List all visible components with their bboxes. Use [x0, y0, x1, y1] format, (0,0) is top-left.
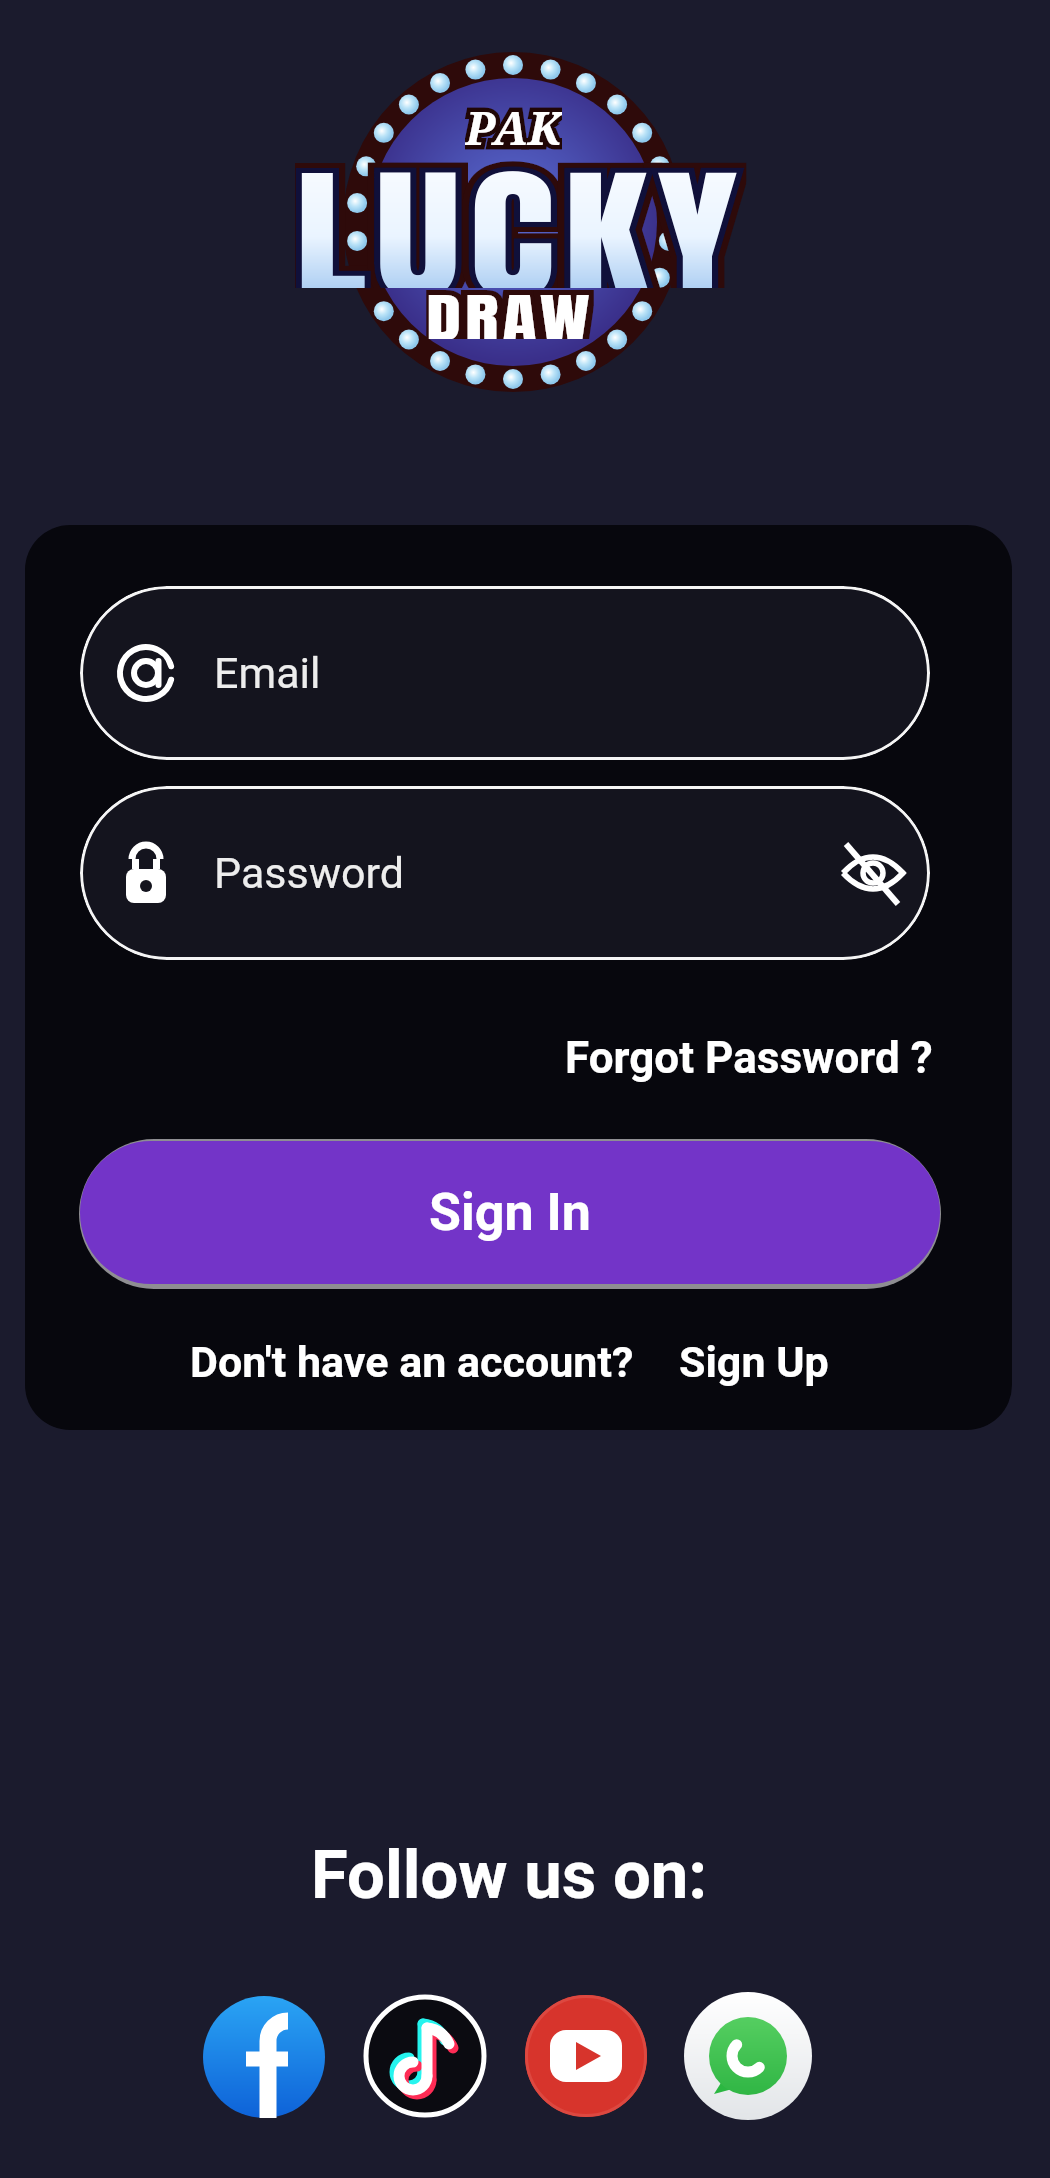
button[interactable]: Sign In — [80, 1141, 940, 1284]
button[interactable] — [525, 1995, 647, 2117]
button[interactable] — [684, 1992, 812, 2120]
button[interactable] — [203, 1996, 325, 2118]
staticText: LUCKY — [295, 128, 746, 288]
staticText: Don't have an account? — [190, 1337, 634, 1387]
button[interactable] — [841, 841, 905, 905]
staticText: PAK — [465, 96, 562, 156]
button[interactable]: Password — [80, 786, 930, 960]
button[interactable]: Sign Up — [679, 1337, 829, 1387]
staticText: DRAW — [426, 279, 594, 339]
button[interactable] — [364, 1995, 486, 2117]
staticText: PAK — [465, 96, 562, 156]
button[interactable]: Email — [80, 586, 930, 760]
staticText: LUCKY — [295, 128, 746, 288]
staticText: Sign In — [429, 1182, 591, 1243]
staticText: Password — [214, 848, 404, 898]
button[interactable]: Forgot Password ? — [565, 1032, 933, 1084]
staticText: LUCKY — [295, 128, 746, 288]
staticText: Follow us on: — [311, 1836, 708, 1915]
staticText: Email — [214, 648, 321, 698]
staticText: DRAW — [426, 279, 594, 339]
